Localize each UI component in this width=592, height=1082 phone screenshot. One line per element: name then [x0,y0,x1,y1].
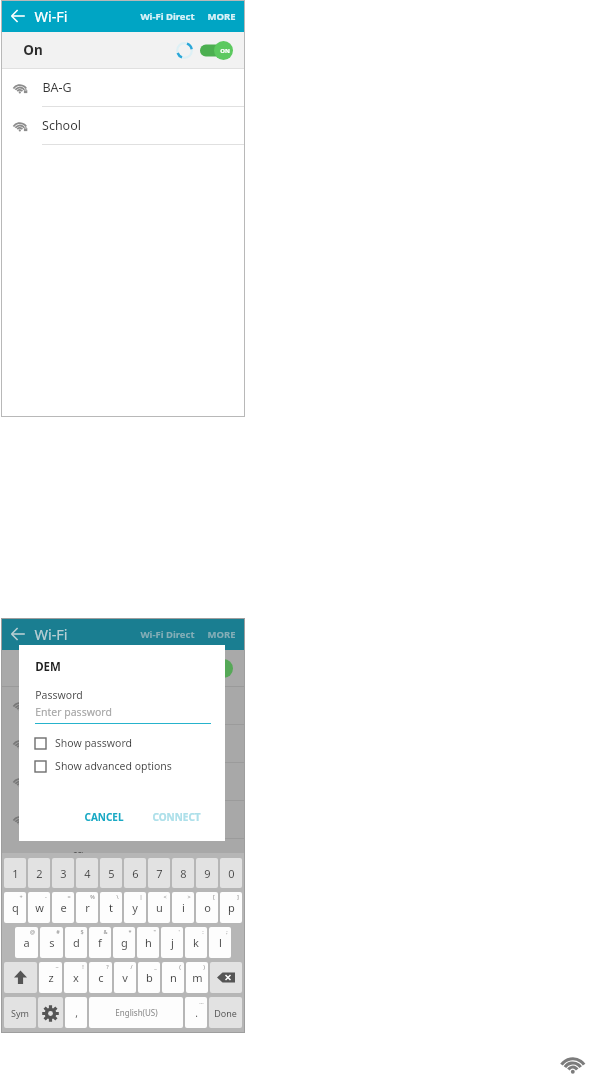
staticText: ; [226,928,228,935]
staticText: o [204,900,211,915]
button[interactable]: | [124,892,146,923]
staticText: n [170,970,177,985]
staticText: \ [116,893,119,900]
button[interactable]: Wi-Fi toggle [199,41,233,60]
other: Wi-Fi [559,1048,589,1078]
staticText: . [195,1006,198,1020]
staticText: Sym [11,1007,29,1019]
button[interactable]: & [89,927,111,958]
button[interactable]: ) [186,962,208,993]
staticText: g [121,935,128,950]
button[interactable]: > [172,892,194,923]
staticText: CANCEL [84,810,124,824]
staticText: 7 [156,866,163,881]
button[interactable]: " [137,927,159,958]
button[interactable]: School [1,107,245,145]
button[interactable]: 3 [52,858,74,888]
button[interactable]: 5 [100,858,122,888]
button[interactable]: * [113,927,135,958]
button[interactable]: English(US) [89,997,183,1028]
button[interactable]: ( [162,962,184,993]
staticText: 1 [12,866,19,881]
staticText: ~ [55,963,59,970]
button[interactable]: Wi-Fi Direct [137,6,198,27]
button[interactable]: Wi-Fi Direct [137,624,198,645]
button[interactable]: MORE [205,6,238,27]
button[interactable]: $ [65,927,87,958]
button[interactable]: _ [138,962,160,993]
staticText: ( [179,963,181,970]
button[interactable]: 7 [148,858,170,888]
staticText: $ [80,928,84,935]
staticText: DEM [35,659,61,675]
button[interactable]: 0 [220,858,242,888]
staticText: | [139,893,143,900]
staticText: = [67,893,71,900]
staticText: s [49,935,55,950]
button[interactable]: Done [209,997,242,1028]
staticText: r [85,900,90,915]
button[interactable]: Back [8,6,28,26]
staticText: BA-Office [42,849,97,866]
staticText: e [60,900,67,915]
button[interactable]: ... [185,997,207,1028]
button[interactable]: / [114,962,136,993]
button[interactable]: CONNECT [146,805,207,829]
button[interactable]: ! [64,962,87,993]
staticText: 5 [108,866,115,881]
button[interactable]: [ [196,892,218,923]
button[interactable]: On [1,32,245,68]
button[interactable]: BA-G [1,69,245,107]
button[interactable]: # [40,927,63,958]
button[interactable]: MORE [205,624,238,645]
staticText: CONNECT [152,810,201,824]
staticText: Wi-Fi Direct [140,10,195,23]
staticText: x [73,970,79,985]
button[interactable]: 6 [124,858,146,888]
button[interactable]: @ [15,927,38,958]
button[interactable]: ? [89,962,112,993]
staticText: [ [213,893,215,900]
staticText: ... [199,998,204,1005]
button[interactable]: Back [8,624,28,644]
button[interactable]: \ [100,892,122,923]
staticText: ! [82,963,84,970]
staticText: ? [106,963,109,970]
button[interactable]: Backspace [210,962,242,993]
button[interactable]: 9 [196,858,218,888]
button[interactable]: , [65,997,87,1028]
staticText: l [219,935,222,950]
staticText: < [163,893,167,900]
button[interactable]: 8 [172,858,194,888]
button[interactable]: Shift [4,962,37,993]
staticText: MORE [207,628,236,641]
staticText: Password [35,688,83,702]
button[interactable]: ~ [39,962,62,993]
staticText: v [122,970,128,985]
button[interactable]: 4 [76,858,98,888]
button[interactable]: 1 [4,858,26,888]
button[interactable]: ' [161,927,183,958]
button[interactable]: = [52,892,74,923]
staticText: English(US) [115,1007,158,1018]
button[interactable]: 2 [28,858,50,888]
button[interactable]: Show advanced options [35,759,211,773]
button[interactable]: CANCEL [78,805,130,829]
button[interactable]: : [185,927,207,958]
button[interactable]: % [76,892,98,923]
staticText: School [42,117,81,134]
staticText: m [192,970,203,985]
button[interactable]: Sym [4,997,36,1028]
button[interactable]: ] [220,892,242,923]
staticText: p [228,900,235,915]
staticText: Enter password [35,705,112,719]
button[interactable]: Show password [35,736,211,750]
staticText: 8 [180,866,187,881]
button[interactable]: Settings [38,997,63,1028]
staticText: 3 [60,866,67,881]
button[interactable]: - [28,892,50,923]
button[interactable]: < [148,892,170,923]
button[interactable]: ; [209,927,231,958]
button[interactable]: + [4,892,26,923]
staticText: Show password [55,736,132,750]
